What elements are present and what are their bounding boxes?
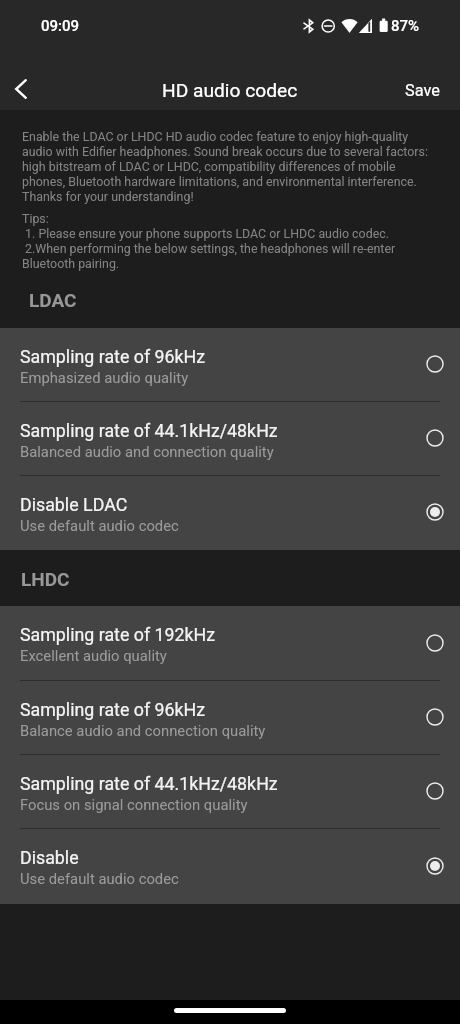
staticText: Enable the LDAC or LHDC HD audio codec f… <box>22 129 428 204</box>
button[interactable]: Sampling rate of 192kHz <box>0 606 460 681</box>
staticText: LHDC <box>21 568 70 590</box>
button[interactable]: Sampling rate of 96kHz <box>0 328 460 402</box>
button[interactable]: Sampling rate of 44.1kHz/48kHz <box>0 402 460 476</box>
staticText: Sampling rate of 192kHz <box>20 624 216 645</box>
button[interactable]: Sampling rate of 44.1kHz/48kHz <box>0 755 460 829</box>
staticText: Sampling rate of 44.1kHz/48kHz <box>20 420 278 441</box>
staticText: Sampling rate of 44.1kHz/48kHz <box>20 773 278 794</box>
staticText: Disable <box>20 847 79 868</box>
staticText: LDAC <box>29 289 77 311</box>
staticText: Sampling rate of 96kHz <box>20 699 206 720</box>
staticText: Disable LDAC <box>20 494 128 515</box>
staticText: Balanced audio and connection quality <box>20 443 274 460</box>
staticText: 09:09 <box>41 17 80 35</box>
staticText: Tips: 1. Please ensure your phone suppor… <box>22 211 396 271</box>
staticText: Balance audio and connection quality <box>20 722 266 739</box>
button[interactable]: Save <box>385 73 460 108</box>
button[interactable]: Back <box>0 68 41 109</box>
staticText: Use default audio codec <box>20 870 179 887</box>
staticText: Save <box>405 81 440 100</box>
button[interactable]: Sampling rate of 96kHz <box>0 681 460 755</box>
staticText: Emphasized audio quality <box>20 369 189 386</box>
staticText: Use default audio codec <box>20 517 179 534</box>
button[interactable]: Disable LDAC <box>0 476 460 550</box>
staticText: Sampling rate of 96kHz <box>20 346 206 367</box>
button[interactable]: Disable <box>0 829 460 904</box>
staticText: HD audio codec <box>162 79 298 102</box>
staticText: Excellent audio quality <box>20 647 167 664</box>
staticText: 87% <box>391 17 420 35</box>
staticText: Focus on signal connection quality <box>20 796 248 813</box>
